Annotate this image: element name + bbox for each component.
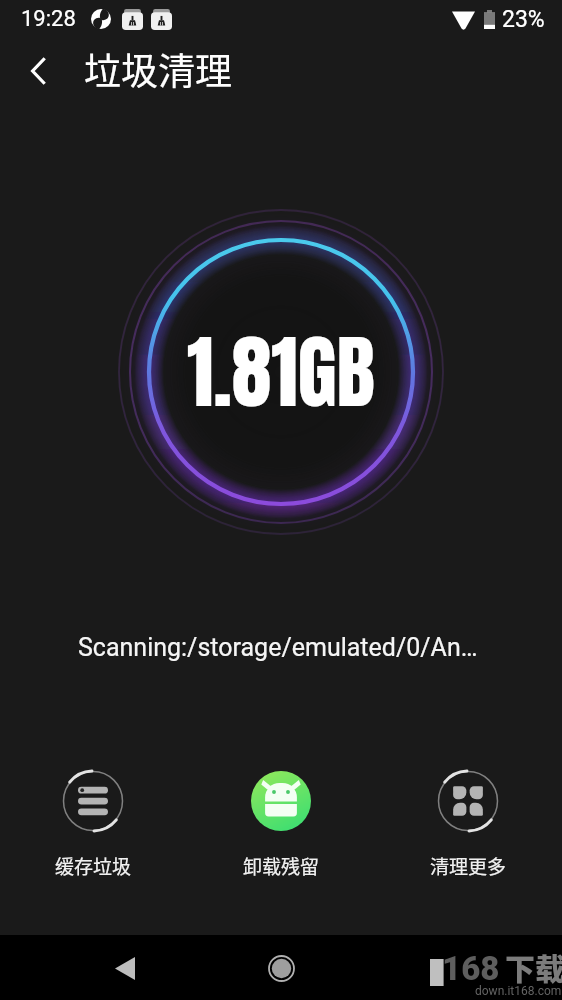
staticText: 19:28: [21, 6, 76, 32]
staticText: 缓存垃圾: [55, 852, 132, 880]
staticText: down.it168.com: [475, 984, 562, 998]
staticText: 1.81GB: [187, 312, 375, 432]
staticText: 23%: [502, 6, 545, 33]
staticText: 垃圾清理: [84, 42, 232, 96]
button[interactable]: 卸载残留: [211, 770, 351, 880]
button[interactable]: Back: [10, 43, 66, 99]
staticText: 卸载残留: [243, 852, 320, 880]
staticText: 168: [442, 949, 500, 988]
button[interactable]: 清理更多: [398, 770, 538, 880]
button[interactable]: 缓存垃圾: [23, 770, 163, 880]
staticText: Scanning:/storage/emulated/0/An…: [78, 633, 478, 662]
staticText: 下载: [505, 945, 562, 988]
button[interactable]: Home: [257, 944, 305, 992]
button[interactable]: Back: [101, 944, 149, 992]
staticText: 清理更多: [430, 852, 507, 880]
